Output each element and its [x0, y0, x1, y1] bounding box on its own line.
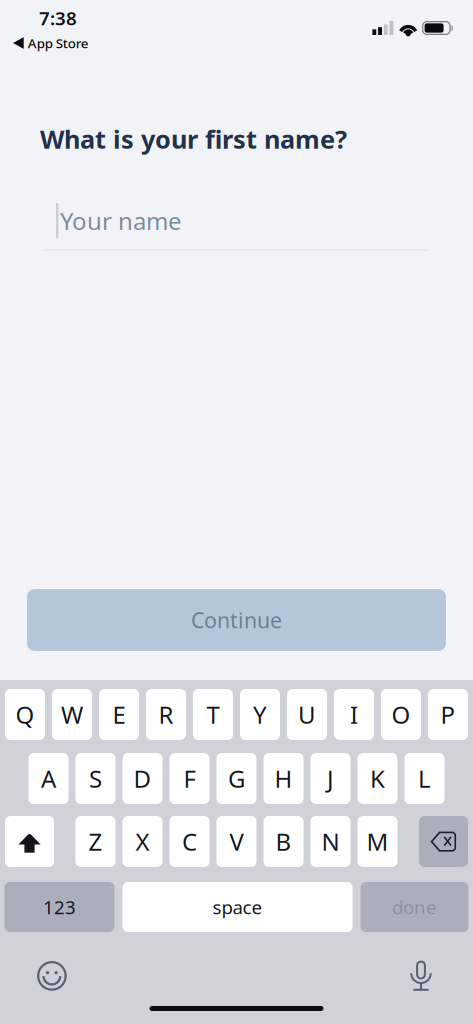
button[interactable]: 123 — [4, 882, 114, 932]
button[interactable]: K — [357, 753, 397, 804]
button[interactable]: C — [169, 816, 209, 867]
button[interactable]: P — [428, 689, 468, 740]
button[interactable]: V — [216, 816, 256, 867]
button[interactable]: R — [146, 689, 186, 740]
button[interactable]: done — [360, 882, 468, 932]
button[interactable]: E — [99, 689, 139, 740]
staticText: M — [366, 826, 388, 857]
button[interactable]: G — [216, 753, 256, 804]
button[interactable]: Dictation — [397, 954, 445, 998]
button[interactable]: Delete — [419, 816, 468, 867]
button[interactable]: Continue — [27, 589, 446, 651]
staticText: What is your first name? — [40, 122, 347, 156]
button[interactable]: Z — [75, 816, 115, 867]
staticText: W — [61, 699, 83, 730]
staticText: 123 — [43, 895, 76, 919]
staticText: V — [229, 826, 243, 857]
staticText: done — [392, 895, 437, 919]
staticText: K — [370, 763, 385, 794]
staticText: Q — [15, 699, 34, 730]
staticText: U — [298, 699, 316, 730]
staticText: L — [418, 763, 431, 794]
staticText: X — [135, 826, 149, 857]
staticText: E — [112, 699, 125, 730]
staticText: Continue — [191, 606, 282, 634]
staticText: O — [391, 699, 410, 730]
button[interactable]: F — [169, 753, 209, 804]
staticText: I — [350, 699, 358, 730]
staticText: space — [212, 895, 262, 919]
staticText: D — [133, 763, 151, 794]
staticText: Y — [253, 699, 267, 730]
button[interactable]: U — [287, 689, 327, 740]
staticText: F — [183, 763, 195, 794]
button[interactable]: Q — [5, 689, 45, 740]
staticText: A — [41, 763, 56, 794]
button[interactable]: Emoji — [28, 954, 76, 998]
staticText: 7:38 — [39, 6, 77, 30]
button[interactable]: App Store — [0, 0, 143, 51]
staticText: G — [228, 763, 245, 794]
button[interactable]: Y — [240, 689, 280, 740]
button[interactable]: B — [263, 816, 303, 867]
staticText: J — [327, 763, 334, 794]
staticText: H — [274, 763, 292, 794]
staticText: T — [206, 699, 219, 730]
staticText: App Store — [28, 34, 89, 52]
button[interactable]: M — [357, 816, 397, 867]
button[interactable]: J — [310, 753, 350, 804]
button[interactable]: W — [52, 689, 92, 740]
staticText: B — [275, 826, 291, 857]
button[interactable]: A — [28, 753, 68, 804]
button[interactable]: O — [381, 689, 421, 740]
button[interactable]: H — [263, 753, 303, 804]
button[interactable]: X — [122, 816, 162, 867]
button[interactable]: I — [334, 689, 374, 740]
staticText: R — [158, 699, 173, 730]
button[interactable]: S — [75, 753, 115, 804]
staticText: Your name — [60, 205, 182, 237]
staticText: S — [89, 763, 102, 794]
button[interactable]: N — [310, 816, 350, 867]
staticText: C — [182, 826, 197, 857]
button[interactable]: Shift — [5, 816, 54, 867]
button[interactable]: T — [193, 689, 233, 740]
staticText: N — [321, 826, 339, 857]
staticText: P — [440, 699, 455, 730]
staticText: Z — [88, 826, 102, 857]
button[interactable]: space — [122, 882, 352, 932]
button[interactable]: L — [404, 753, 444, 804]
button[interactable]: D — [122, 753, 162, 804]
